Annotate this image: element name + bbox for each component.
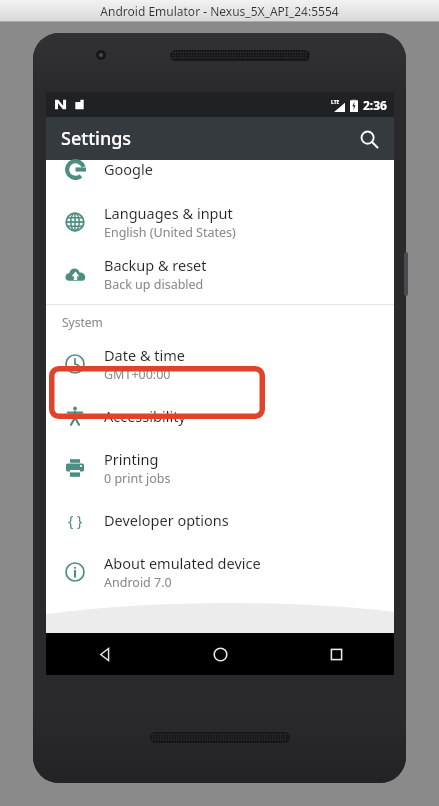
button[interactable]: Recent apps [278,633,394,675]
staticText: System [62,314,103,330]
staticText: Languages & input [104,203,233,223]
button[interactable]: Google [46,160,394,196]
button[interactable]: Home [162,633,278,675]
button[interactable]: Search [350,120,388,158]
staticText: Android 7.0 [104,574,172,591]
staticText: Backup & reset [104,255,207,275]
staticText: English (United States) [104,224,236,241]
button[interactable]: Accessibility [46,390,394,442]
staticText: 2:36 [363,97,387,113]
staticText: Developer options [104,510,229,530]
staticText: Accessibility [104,406,186,426]
staticText: Android Emulator - Nexus_5X_API_24:5554 [100,3,339,19]
staticText: About emulated device [104,553,261,573]
staticText: Back up disabled [104,276,204,293]
staticText: Google [104,159,153,179]
button[interactable]: About emulated device [46,546,394,598]
button[interactable]: { } [46,494,394,546]
staticText: Date & time [104,345,185,365]
staticText: 0 print jobs [104,470,171,487]
staticText: LTE [331,99,340,106]
button[interactable]: Printing [46,442,394,494]
staticText: { } [68,511,83,530]
button[interactable]: Backup & reset [46,248,394,300]
button[interactable]: Back [46,633,162,675]
button[interactable]: Date & time [46,338,394,390]
staticText: GMT+00:00 [104,366,171,383]
button[interactable]: Languages & input [46,196,394,248]
staticText: Settings [61,126,132,151]
staticText: Printing [104,449,159,469]
